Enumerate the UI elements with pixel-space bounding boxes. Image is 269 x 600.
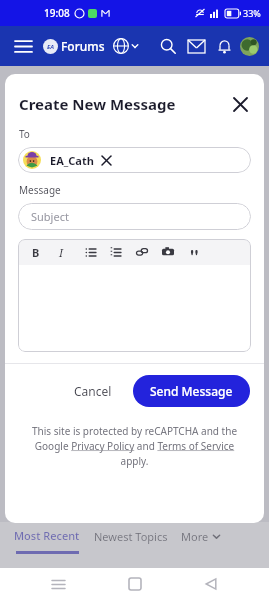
button[interactable]: Home (117, 568, 153, 600)
staticText: EA (47, 43, 55, 51)
button[interactable]: EA (43, 38, 105, 54)
staticText: Message (19, 183, 61, 197)
button[interactable]: Search (155, 33, 181, 59)
button[interactable]: Italic (52, 243, 70, 261)
button[interactable]: EA_Cath (18, 147, 251, 173)
button[interactable]: Send Message (133, 375, 250, 407)
button[interactable]: Insert image (159, 243, 177, 261)
staticText: 19:08 (44, 6, 70, 20)
staticText: 33% (243, 7, 261, 19)
button[interactable] (18, 265, 251, 352)
button[interactable]: Menu (10, 33, 36, 59)
button[interactable]: Subject (18, 203, 251, 230)
staticText: To (19, 127, 30, 141)
staticText: This site is protected by reCAPTCHA and … (30, 424, 239, 468)
button[interactable]: Remove recipient (99, 153, 113, 167)
staticText: Send Message (150, 383, 233, 399)
button[interactable]: Profile (240, 37, 259, 56)
staticText: Create New Message (19, 94, 176, 114)
button[interactable]: Language (113, 38, 139, 54)
button[interactable]: Close (226, 90, 254, 118)
staticText: I (59, 245, 64, 260)
staticText: Cancel (74, 383, 112, 399)
button[interactable]: Bulleted list (81, 243, 99, 261)
button[interactable]: Quote (185, 243, 203, 261)
button[interactable]: Numbered list (106, 243, 124, 261)
button[interactable]: Bold (27, 243, 45, 261)
button[interactable]: Messages (183, 33, 209, 59)
button[interactable]: Insert link (133, 243, 151, 261)
staticText: Most Recent (14, 528, 80, 543)
button[interactable]: Cancel (61, 376, 125, 406)
staticText: B (32, 245, 40, 260)
button[interactable]: Newest Topics (94, 529, 168, 554)
button[interactable]: Recent apps (40, 568, 76, 600)
staticText: Subject (31, 209, 69, 224)
staticText: Forums (61, 38, 105, 54)
button[interactable]: More (181, 529, 221, 554)
staticText: Newest Topics (94, 529, 168, 544)
button[interactable]: Back (193, 568, 229, 600)
button[interactable]: Most Recent (0, 528, 80, 554)
staticText: More (181, 529, 209, 544)
staticText: EA_Cath (50, 153, 94, 168)
button[interactable]: Notifications (211, 33, 237, 59)
